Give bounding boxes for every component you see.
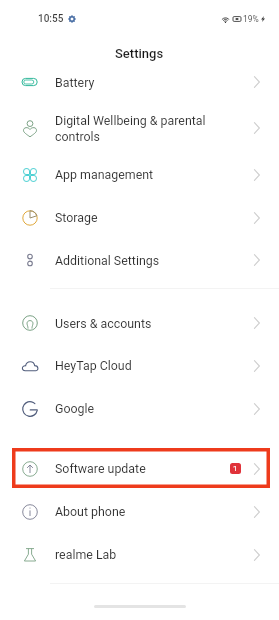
- button[interactable]: Digital Wellbeing & parental controls: [0, 103, 279, 153]
- button[interactable]: App management: [0, 153, 279, 196]
- staticText: 1: [233, 464, 238, 473]
- staticText: App management: [55, 167, 239, 182]
- staticText: Additional Settings: [55, 253, 239, 268]
- staticText: Settings: [115, 46, 164, 61]
- button[interactable]: Google: [0, 387, 279, 430]
- button[interactable]: Battery: [0, 61, 279, 103]
- button[interactable]: Storage: [0, 196, 279, 239]
- staticText: 10:55: [38, 13, 64, 25]
- button[interactable]: Additional Settings: [0, 239, 279, 281]
- button[interactable]: realme Lab: [0, 533, 279, 576]
- button[interactable]: Users & accounts: [0, 302, 279, 344]
- staticText: Storage: [55, 210, 239, 225]
- staticText: Digital Wellbeing & parental controls: [55, 113, 239, 144]
- staticText: Software update: [55, 461, 216, 476]
- button[interactable]: About phone: [0, 490, 279, 533]
- staticText: Battery: [55, 75, 239, 90]
- button[interactable]: HeyTap Cloud: [0, 344, 279, 387]
- staticText: Google: [55, 401, 239, 416]
- button[interactable]: Software update: [0, 447, 279, 490]
- staticText: About phone: [55, 504, 239, 519]
- staticText: HeyTap Cloud: [55, 358, 239, 373]
- staticText: Users & accounts: [55, 316, 239, 331]
- staticText: 19%: [243, 14, 259, 24]
- staticText: realme Lab: [55, 547, 239, 562]
